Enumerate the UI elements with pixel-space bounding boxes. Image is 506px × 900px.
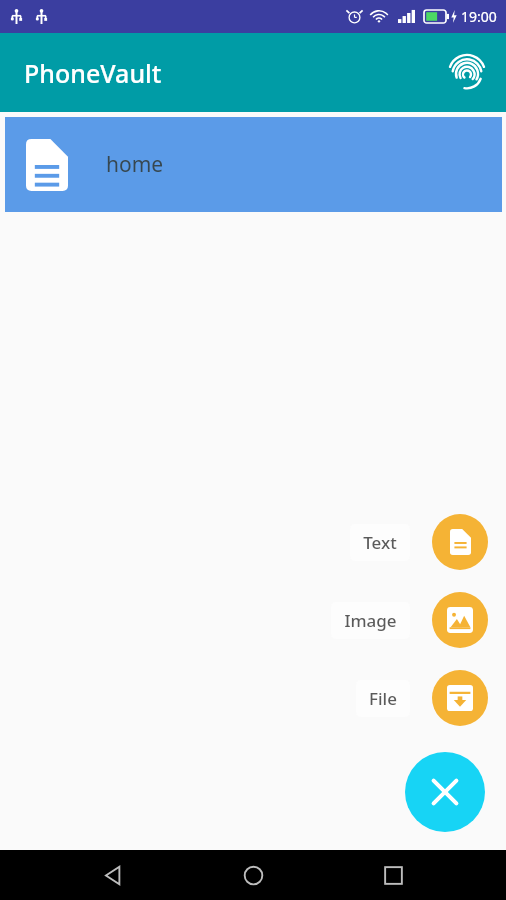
button[interactable]: home [5,117,502,212]
button[interactable]: Recent apps [366,850,420,900]
button[interactable]: Add text note [432,514,488,570]
button[interactable]: Add image [432,592,488,648]
button[interactable]: Image [331,602,410,639]
staticText: 19:00 [461,7,497,26]
staticText: File [369,687,397,710]
staticText: home [106,150,164,179]
button[interactable]: Home [226,850,280,900]
button[interactable]: File [356,680,410,717]
staticText: Image [344,609,397,632]
button[interactable]: Close menu [405,752,485,832]
button[interactable]: Fingerprint unlock [440,46,494,100]
button[interactable]: Add file [432,670,488,726]
staticText: PhoneVault [24,56,162,90]
staticText: Text [363,531,397,554]
button[interactable]: Back [86,850,140,900]
button[interactable]: Text [350,524,410,561]
